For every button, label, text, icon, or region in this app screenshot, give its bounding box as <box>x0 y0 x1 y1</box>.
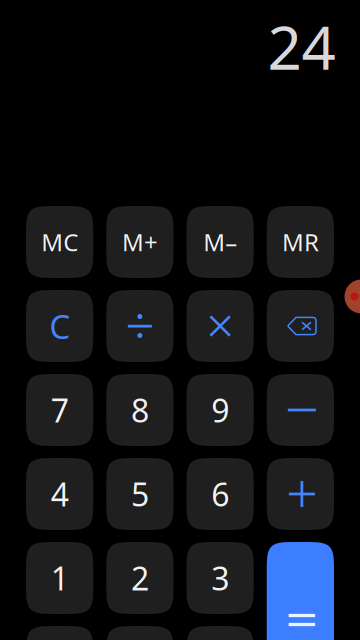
staticText: M– <box>203 226 237 258</box>
staticText: MC <box>41 226 78 258</box>
button[interactable]: Equals <box>267 542 334 640</box>
button[interactable]: MR <box>267 206 334 278</box>
button[interactable]: Divide <box>106 290 173 362</box>
button[interactable]: Backspace <box>267 290 334 362</box>
staticText: 7 <box>51 389 69 431</box>
button[interactable]: Plus <box>267 458 334 530</box>
button[interactable]: . <box>106 626 173 640</box>
button[interactable]: 1 <box>26 542 93 614</box>
button[interactable]: 9 <box>186 374 254 446</box>
button[interactable]: Multiply <box>186 290 254 362</box>
staticText: 6 <box>211 473 229 515</box>
staticText: 24 <box>267 7 335 86</box>
staticText: M+ <box>122 226 158 258</box>
staticText: 1 <box>51 557 69 599</box>
staticText: 2 <box>131 557 149 599</box>
staticText: C <box>49 304 70 348</box>
button[interactable]: % <box>186 626 254 640</box>
button[interactable]: 4 <box>26 458 93 530</box>
staticText: 9 <box>211 389 229 431</box>
staticText: MR <box>282 226 319 258</box>
button[interactable]: 8 <box>106 374 173 446</box>
button[interactable]: 2 <box>106 542 173 614</box>
button[interactable]: C <box>26 290 93 362</box>
staticText: 8 <box>131 389 149 431</box>
button[interactable]: 3 <box>186 542 254 614</box>
button[interactable]: M+ <box>106 206 173 278</box>
button[interactable]: 6 <box>186 458 254 530</box>
staticText: 3 <box>211 557 229 599</box>
button[interactable]: M– <box>186 206 254 278</box>
button[interactable]: 5 <box>106 458 173 530</box>
staticText: 4 <box>51 473 69 515</box>
staticText: 5 <box>131 473 149 515</box>
button[interactable]: 0 <box>26 626 93 640</box>
button[interactable]: MC <box>26 206 93 278</box>
button[interactable]: Minus <box>267 374 334 446</box>
button[interactable]: 7 <box>26 374 93 446</box>
